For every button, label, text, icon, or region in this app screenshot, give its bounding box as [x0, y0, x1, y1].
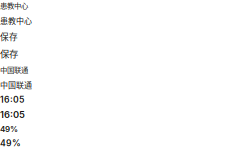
staticText: 49%	[0, 138, 21, 148]
staticText: 患教中心	[0, 15, 32, 26]
staticText: 16:05	[0, 109, 25, 120]
staticText: 保存	[0, 30, 18, 43]
staticText: 49%	[0, 124, 18, 134]
staticText: 保存	[0, 47, 18, 60]
staticText: 患教中心	[0, 0, 28, 11]
staticText: 16:05	[0, 94, 24, 105]
staticText: 中国联通	[0, 64, 28, 75]
staticText: 中国联通	[0, 79, 32, 90]
